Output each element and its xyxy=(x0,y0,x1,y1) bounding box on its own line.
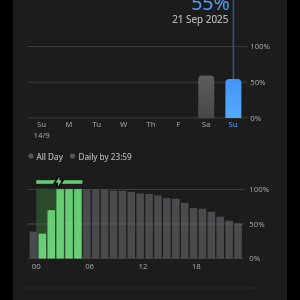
button[interactable] xyxy=(0,0,300,300)
